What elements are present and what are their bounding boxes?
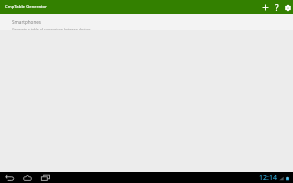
staticText: ?	[275, 2, 279, 13]
button[interactable]: Settings	[282, 2, 293, 13]
button[interactable]: Home	[22, 172, 33, 183]
button[interactable]: Back	[4, 172, 15, 183]
staticText: 12:14	[259, 173, 277, 183]
staticText: Smartphones	[12, 19, 42, 25]
button[interactable]: Help	[271, 2, 282, 13]
button[interactable]: Recents	[40, 172, 51, 183]
button[interactable]: Smartphones	[0, 14, 293, 30]
staticText: CmpTable Generator	[5, 4, 47, 10]
button[interactable]: Add	[260, 2, 271, 13]
staticText: Generate a table of comparison between d…	[12, 27, 91, 30]
